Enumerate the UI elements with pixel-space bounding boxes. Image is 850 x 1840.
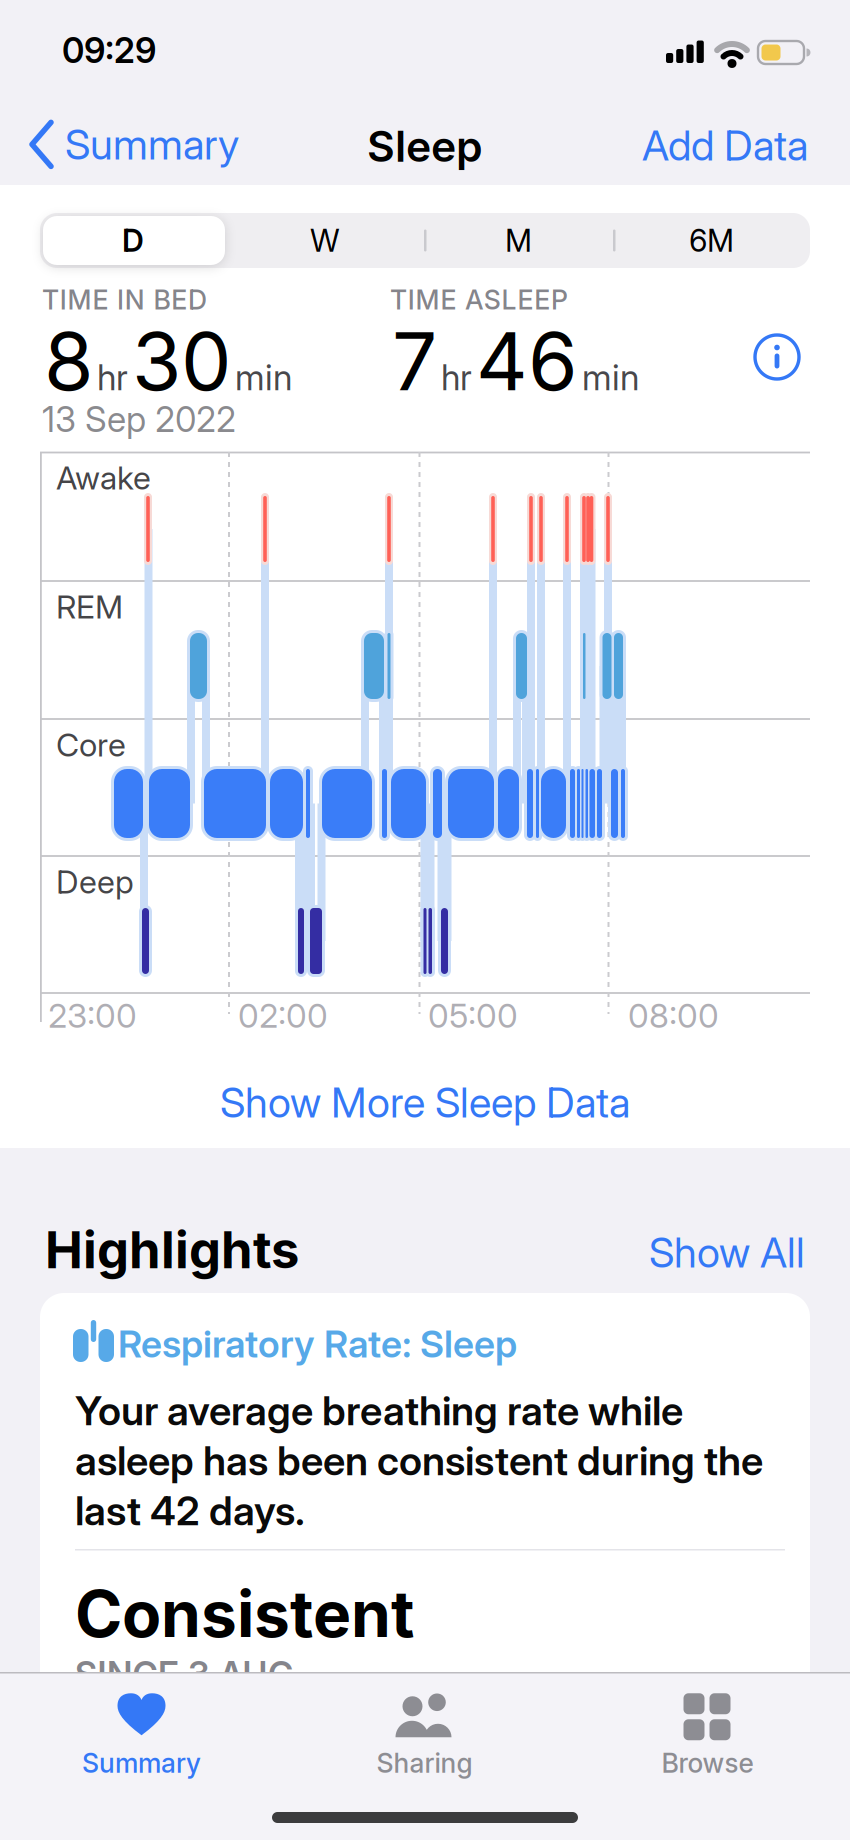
staticText: 8 — [44, 314, 93, 408]
staticText: D — [122, 222, 144, 259]
staticText: M — [505, 222, 532, 259]
button[interactable]: About Sleep — [754, 334, 800, 380]
staticText: Sharing — [376, 1747, 472, 1779]
button[interactable]: W — [226, 213, 424, 268]
staticText: 7 — [392, 314, 437, 408]
staticText: Summary — [65, 120, 239, 169]
staticText: Sleep — [367, 121, 483, 171]
staticText: 6M — [689, 222, 734, 259]
staticText: Deep — [56, 863, 134, 901]
button[interactable]: Browse — [566, 1686, 849, 1786]
staticText: 46 — [476, 314, 578, 408]
staticText: Core — [56, 726, 126, 764]
button[interactable]: M — [424, 213, 613, 268]
staticText: 13 Sep 2022 — [42, 399, 236, 440]
staticText: Show More Sleep Data — [220, 1078, 630, 1127]
staticText: 08:00 — [628, 996, 719, 1035]
staticText: 09:29 — [62, 30, 156, 71]
button[interactable]: Summary — [30, 120, 239, 169]
button[interactable]: Show More Sleep Data — [220, 1078, 630, 1127]
staticText: Add Data — [642, 121, 808, 170]
staticText: Show All — [649, 1228, 805, 1277]
staticText: hr — [97, 357, 128, 398]
button[interactable]: Show All — [649, 1228, 805, 1277]
staticText: W — [310, 222, 340, 259]
button[interactable]: D — [40, 213, 226, 268]
staticText: min — [235, 357, 292, 398]
staticText: 30 — [132, 314, 231, 408]
staticText: min — [582, 357, 639, 398]
staticText: Your average breathing rate while — [75, 1387, 683, 1434]
staticText: TIME ASLEEP — [390, 284, 568, 315]
staticText: Browse — [661, 1747, 753, 1779]
staticText: Highlights — [45, 1220, 299, 1280]
staticText: SINCE 3 AUG — [75, 1654, 294, 1695]
staticText: Summary — [82, 1747, 201, 1779]
staticText: TIME IN BED — [42, 284, 207, 315]
button[interactable]: Respiratory Rate: Sleep — [40, 1293, 810, 1793]
staticText: Awake — [56, 459, 151, 497]
button[interactable]: Add Data — [642, 121, 808, 170]
button[interactable]: Sharing — [283, 1686, 566, 1786]
staticText: 23:00 — [48, 996, 137, 1035]
staticText: 05:00 — [428, 996, 518, 1035]
button[interactable]: 6M — [613, 213, 810, 268]
staticText: hr — [441, 357, 472, 398]
staticText: 02:00 — [238, 996, 328, 1035]
staticText: asleep has been consistent during the — [75, 1437, 763, 1484]
button[interactable]: Summary — [0, 1686, 283, 1786]
staticText: Respiratory Rate: Sleep — [118, 1322, 517, 1366]
staticText: REM — [56, 588, 123, 626]
staticText: Consistent — [75, 1576, 414, 1651]
staticText: last 42 days. — [75, 1487, 305, 1534]
